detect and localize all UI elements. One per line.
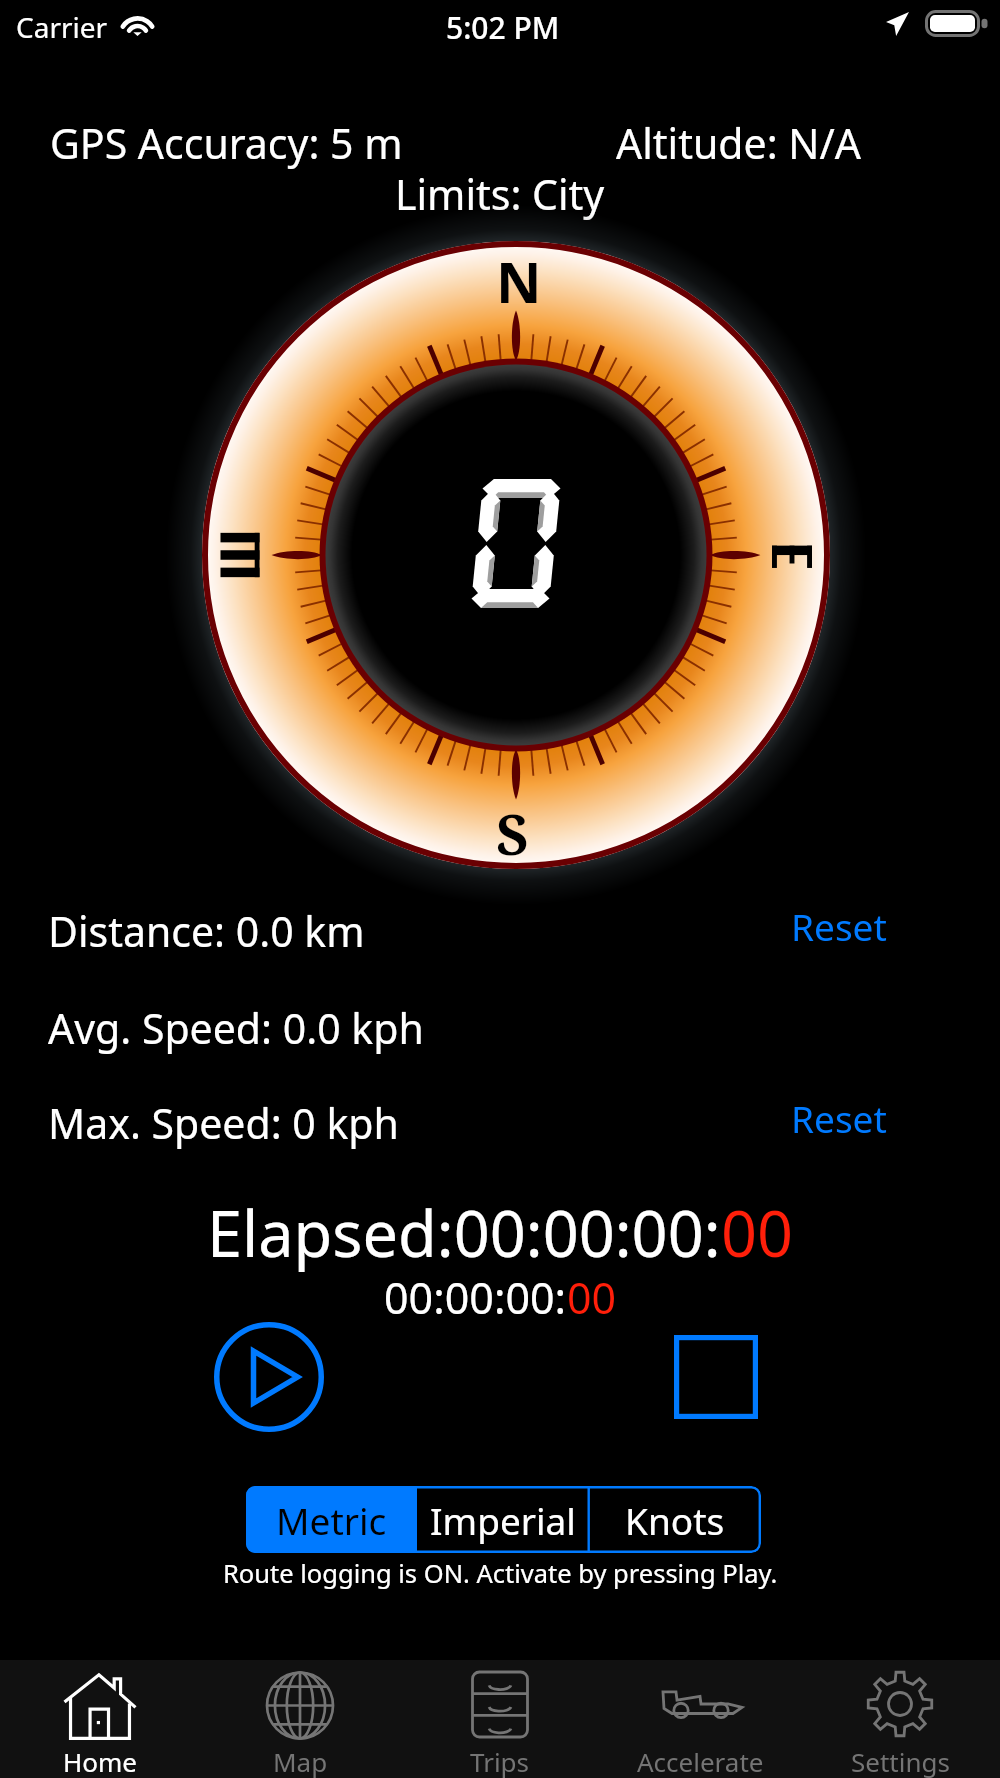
staticText: Max. Speed: 0 kph: [48, 1095, 399, 1151]
button[interactable]: Play: [214, 1322, 324, 1432]
staticText: 00: [567, 1268, 617, 1327]
staticText: Settings: [851, 1744, 950, 1778]
staticText: N: [496, 243, 542, 319]
staticText: Imperial: [430, 1495, 576, 1545]
staticText: 00: [721, 1190, 794, 1276]
staticText: Avg. Speed: 0.0 kph: [48, 1000, 424, 1056]
button[interactable]: Trips: [400, 1660, 600, 1778]
staticText: 00:00:00:: [384, 1268, 567, 1327]
button[interactable]: Map: [200, 1660, 400, 1778]
button[interactable]: Stop: [674, 1335, 758, 1419]
button[interactable]: Imperial: [417, 1486, 589, 1553]
staticText: Reset: [791, 1093, 887, 1143]
staticText: Elapsed:00:00:00:: [207, 1190, 721, 1276]
staticText: Metric: [276, 1495, 387, 1545]
staticText: GPS Accuracy: 5 m: [50, 115, 403, 171]
staticText: Accelerate: [637, 1744, 764, 1778]
staticText: Limits: City: [395, 166, 605, 222]
button[interactable]: Reset: [774, 1090, 904, 1146]
button[interactable]: Knots: [589, 1486, 761, 1553]
button[interactable]: Metric: [246, 1486, 417, 1553]
staticText: Reset: [791, 901, 887, 951]
staticText: Map: [273, 1744, 328, 1778]
staticText: Altitude: N/A: [616, 115, 861, 171]
staticText: S: [496, 795, 529, 871]
button[interactable]: Home: [0, 1660, 200, 1778]
button[interactable]: Settings: [800, 1660, 1000, 1778]
staticText: Route logging is ON. Activate by pressin…: [223, 1556, 778, 1591]
staticText: Trips: [470, 1744, 530, 1778]
staticText: Knots: [625, 1495, 725, 1545]
staticText: Home: [63, 1744, 137, 1778]
staticText: 5:02 PM: [446, 7, 560, 48]
button[interactable]: Accelerate: [600, 1660, 800, 1778]
button[interactable]: Reset: [774, 898, 904, 954]
staticText: Carrier: [16, 8, 108, 46]
staticText: Distance: 0.0 km: [48, 903, 365, 959]
